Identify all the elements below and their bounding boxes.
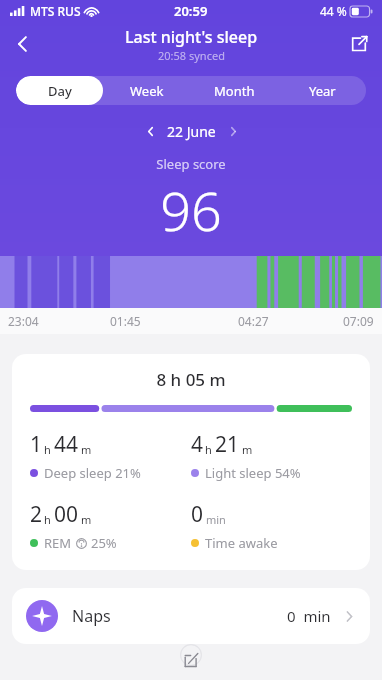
staticText: 44 [54, 430, 79, 459]
staticText: REM [44, 534, 72, 552]
staticText: 21 [215, 430, 240, 459]
staticText: m [81, 442, 92, 457]
staticText: 4 [191, 430, 204, 459]
staticText: 44 % [320, 3, 347, 19]
button[interactable]: Share [336, 22, 382, 66]
staticText: 23:04 [8, 313, 39, 329]
staticText: Month [214, 82, 255, 100]
staticText: 2 [30, 500, 43, 529]
staticText: Naps [72, 605, 111, 627]
staticText: h [44, 512, 51, 527]
staticText: min [206, 512, 226, 527]
staticText: 22 June [167, 122, 216, 141]
staticText: 96 [0, 173, 382, 247]
button[interactable]: 8 h 05 m [12, 354, 370, 570]
button[interactable]: Month [190, 76, 278, 105]
staticText: 00 [54, 500, 79, 529]
staticText: 8 h 05 m [12, 368, 370, 391]
staticText: 0 [191, 500, 204, 529]
staticText: 1 [30, 430, 43, 459]
button[interactable]: Previous day [137, 118, 163, 144]
staticText: Year [309, 82, 336, 100]
staticText: Light sleep 54% [205, 464, 301, 482]
staticText: 07:09 [343, 313, 374, 329]
staticText: Last night's sleep [125, 26, 258, 48]
staticText: Sleep score [0, 155, 382, 173]
staticText: 20:58 synced [158, 48, 225, 63]
staticText: h [205, 442, 212, 457]
staticText: 01:45 [110, 313, 141, 329]
staticText: 04:27 [238, 313, 269, 329]
staticText: Deep sleep 21% [44, 464, 141, 482]
staticText: MTS RUS [30, 3, 81, 19]
staticText: Time awake [205, 534, 278, 552]
button[interactable]: Week [103, 76, 190, 105]
staticText: 25% [91, 534, 117, 552]
button[interactable]: Naps [12, 588, 370, 644]
staticText: h [44, 442, 51, 457]
staticText: m [242, 442, 253, 457]
staticText: Week [130, 82, 164, 100]
button[interactable]: Day [16, 76, 103, 105]
button[interactable]: Edit [0, 644, 382, 680]
staticText: Day [48, 82, 72, 100]
button[interactable]: Year [278, 76, 366, 105]
button[interactable]: Next day [220, 118, 246, 144]
staticText: m [81, 512, 92, 527]
button[interactable]: Back [0, 22, 46, 66]
staticText: 0 min [287, 606, 331, 626]
staticText: 20:59 [174, 2, 208, 20]
